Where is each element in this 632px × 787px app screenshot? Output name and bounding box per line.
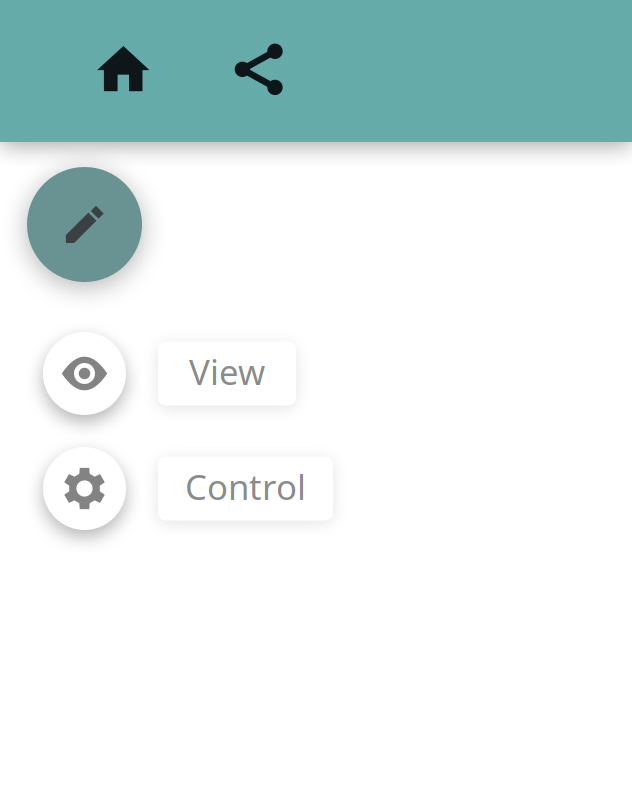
staticText: Control (185, 463, 306, 509)
button[interactable]: View (43, 332, 126, 415)
button[interactable]: Control (158, 456, 333, 520)
button[interactable]: Share (217, 26, 301, 113)
button[interactable]: View (158, 341, 296, 405)
staticText: View (189, 348, 265, 394)
button[interactable]: Home (79, 28, 167, 109)
button[interactable]: Control (43, 447, 126, 530)
button[interactable]: Edit (27, 167, 142, 282)
